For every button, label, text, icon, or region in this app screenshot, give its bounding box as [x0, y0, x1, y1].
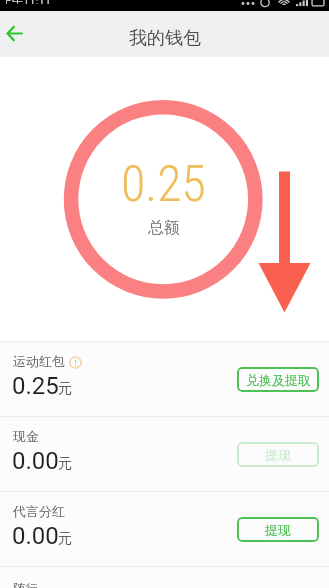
staticText: 运动红包: [13, 353, 65, 369]
staticText: 兑换及提取: [246, 372, 311, 388]
staticText: 元: [58, 530, 72, 548]
staticText: 现金: [13, 428, 39, 444]
staticText: 提现: [265, 447, 291, 463]
staticText: 我的钱包: [129, 27, 201, 50]
staticText: 0.00: [12, 522, 59, 550]
button[interactable]: 提现: [237, 517, 319, 542]
button[interactable]: 提现: [237, 442, 319, 467]
staticText: 0.25: [12, 372, 59, 400]
staticText: 上午11:11: [1, 0, 52, 4]
button[interactable]: 随行: [0, 567, 329, 588]
staticText: 代言分红: [13, 503, 65, 519]
button[interactable]: 说明: [69, 356, 82, 369]
staticText: 0.25: [121, 155, 206, 214]
button[interactable]: 返回: [0, 15, 32, 51]
staticText: 元: [58, 380, 72, 398]
staticText: 随行: [13, 581, 38, 588]
staticText: 0.00: [12, 447, 59, 475]
button[interactable]: 兑换及提取: [237, 367, 319, 392]
staticText: 总额: [148, 218, 180, 238]
staticText: 元: [58, 455, 72, 473]
staticText: 提现: [265, 522, 291, 538]
